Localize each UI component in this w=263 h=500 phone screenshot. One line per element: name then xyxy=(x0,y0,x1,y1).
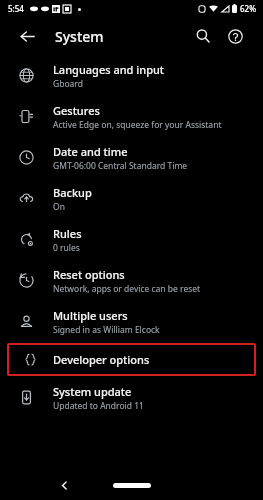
staticText: System xyxy=(55,27,104,46)
button[interactable]: Home xyxy=(113,483,151,488)
staticText: GMT-06:00 Central Standard Time xyxy=(53,160,188,172)
staticText: Gboard xyxy=(53,78,83,90)
staticText: Signed in as William Elcock xyxy=(53,324,160,336)
button[interactable]: Reset options xyxy=(0,260,263,301)
button[interactable]: System update xyxy=(0,377,263,418)
staticText: Languages and input xyxy=(53,62,165,77)
button[interactable]: Back xyxy=(13,22,41,50)
button[interactable]: Backup xyxy=(0,178,263,219)
button[interactable]: Rules xyxy=(0,219,263,260)
staticText: Multiple users xyxy=(53,308,128,323)
staticText: Network, apps or device can be reset xyxy=(53,283,201,295)
button[interactable]: Gestures xyxy=(0,96,263,137)
button[interactable]: Back xyxy=(52,473,76,497)
staticText: Backup xyxy=(53,185,92,200)
staticText: Reset options xyxy=(53,267,125,282)
staticText: Updated to Android 11 xyxy=(53,400,144,412)
button[interactable]: Multiple users xyxy=(0,301,263,342)
button[interactable]: Help xyxy=(221,22,249,50)
button[interactable]: Developer options xyxy=(7,343,256,376)
staticText: Date and time xyxy=(53,144,128,159)
staticText: Gestures xyxy=(53,103,100,118)
staticText: Rules xyxy=(53,226,82,241)
staticText: 5:54 xyxy=(8,3,24,14)
staticText: 62% xyxy=(240,3,256,14)
staticText: Active Edge on, squeeze for your Assista… xyxy=(53,119,222,131)
button[interactable]: Date and time xyxy=(0,137,263,178)
button[interactable]: Search xyxy=(189,22,217,50)
button[interactable]: Languages and input xyxy=(0,55,263,96)
staticText: 0 rules xyxy=(53,242,80,254)
staticText: System update xyxy=(53,384,132,399)
staticText: On xyxy=(53,201,65,213)
staticText: Developer options xyxy=(53,352,150,367)
